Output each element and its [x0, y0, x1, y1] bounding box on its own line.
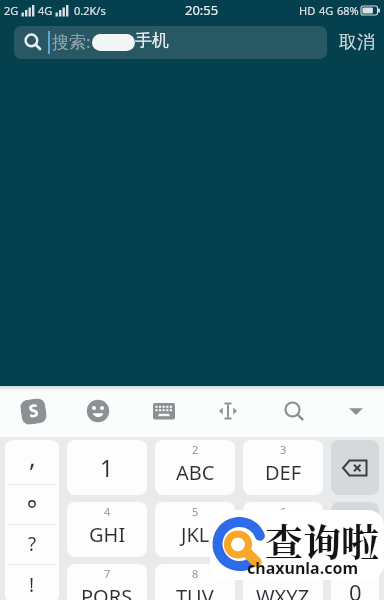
staticText: 9: [280, 566, 287, 581]
staticText: 搜索:: [52, 30, 91, 53]
staticText: 7: [104, 566, 111, 581]
button[interactable]: 7: [67, 564, 147, 600]
button[interactable]: 搜索:: [14, 26, 327, 59]
staticText: JKL: [181, 521, 210, 548]
button[interactable]: 9: [243, 564, 323, 600]
staticText: 5: [192, 504, 199, 519]
button[interactable]: 8: [155, 564, 235, 600]
button[interactable]: [336, 391, 376, 431]
button[interactable]: [208, 391, 248, 431]
button[interactable]: 3: [243, 440, 323, 495]
staticText: 6: [280, 504, 287, 519]
button[interactable]: [144, 391, 184, 431]
staticText: DEF: [265, 459, 302, 486]
staticText: TUV: [176, 583, 214, 600]
staticText: 手机: [135, 30, 169, 51]
button[interactable]: [274, 391, 314, 431]
button[interactable]: S: [13, 391, 53, 431]
staticText: 4: [104, 504, 111, 519]
button[interactable]: [331, 440, 379, 495]
staticText: 4G: [38, 3, 53, 18]
staticText: 2: [192, 442, 199, 457]
staticText: 4G: [319, 3, 334, 18]
staticText: MNO: [259, 521, 308, 548]
staticText: HD: [299, 3, 316, 18]
staticText: !: [29, 572, 35, 598]
button[interactable]: [5, 484, 59, 524]
staticText: S: [27, 398, 40, 423]
staticText: 20:55: [185, 1, 219, 19]
staticText: 8: [192, 566, 199, 581]
button[interactable]: 查询啦: [210, 510, 384, 580]
staticText: 3: [280, 442, 287, 457]
button[interactable]: 5: [155, 502, 235, 557]
staticText: 取消: [339, 31, 375, 54]
button[interactable]: ,: [5, 440, 59, 484]
staticText: WXYZ: [256, 583, 310, 600]
staticText: 1: [100, 452, 114, 483]
staticText: PQRS: [81, 583, 133, 600]
button[interactable]: 2: [155, 440, 235, 495]
button[interactable]: 取消: [339, 31, 375, 54]
staticText: GHI: [89, 521, 126, 548]
button[interactable]: [78, 391, 118, 431]
button[interactable]: 6: [243, 502, 323, 557]
staticText: 68%: [337, 3, 359, 18]
button[interactable]: 4: [67, 502, 147, 557]
staticText: ?: [28, 531, 37, 557]
button[interactable]: [331, 502, 379, 557]
staticText: ABC: [176, 459, 215, 486]
button[interactable]: 1: [67, 440, 147, 495]
button[interactable]: 0: [331, 564, 379, 600]
button[interactable]: ?: [5, 524, 59, 564]
button[interactable]: !: [5, 564, 59, 600]
staticText: 0.2K/s: [74, 3, 106, 18]
staticText: 查询啦: [265, 512, 380, 567]
staticText: chaxunla.com: [247, 557, 358, 579]
staticText: ,: [29, 440, 36, 474]
staticText: 0: [349, 577, 362, 600]
staticText: 2G: [4, 3, 19, 18]
